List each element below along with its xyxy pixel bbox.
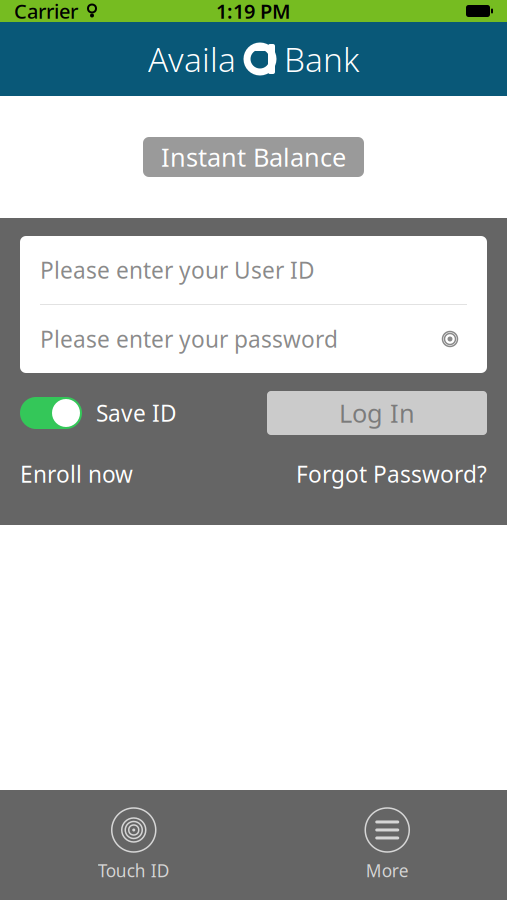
staticText: Save ID xyxy=(96,398,177,428)
staticText: Please enter your password xyxy=(40,324,338,354)
staticText: Please enter your User ID xyxy=(40,255,315,285)
staticText: Instant Balance xyxy=(161,140,346,174)
button[interactable]: Touch ID xyxy=(98,808,170,882)
button[interactable]: Save ID xyxy=(20,397,177,429)
button[interactable]: Show password xyxy=(433,322,467,356)
staticText: Carrier xyxy=(14,0,78,24)
staticText: Availa xyxy=(148,37,236,81)
button[interactable]: Log In xyxy=(267,391,487,435)
staticText: Enroll now xyxy=(20,459,133,489)
button[interactable]: Instant Balance xyxy=(143,137,364,177)
staticText: Bank xyxy=(284,37,359,81)
staticText: More xyxy=(366,859,409,882)
button[interactable]: Enroll now xyxy=(20,459,133,489)
button[interactable]: Forgot Password? xyxy=(296,459,487,489)
button[interactable]: More xyxy=(365,808,409,882)
staticText: Forgot Password? xyxy=(296,459,487,489)
staticText: 1:19 PM xyxy=(216,0,291,24)
staticText: Log In xyxy=(339,396,415,430)
staticText: Touch ID xyxy=(98,859,170,882)
